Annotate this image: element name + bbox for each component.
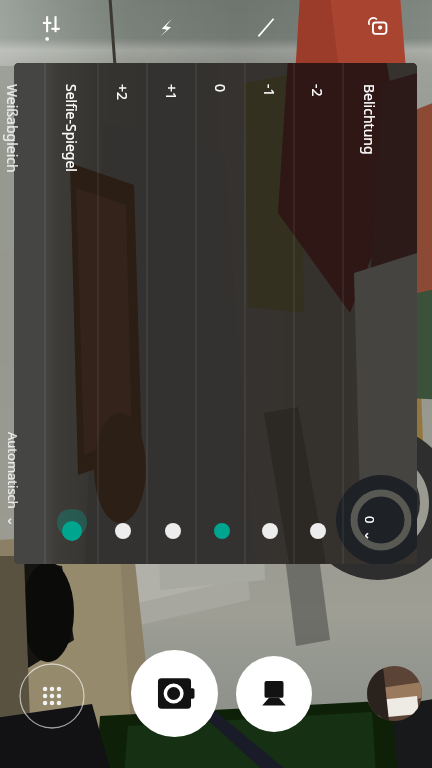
button[interactable]: Settings [32,7,74,49]
button[interactable]: Option [296,509,340,553]
staticText: -2 [308,84,327,97]
button[interactable]: Gallery [367,666,422,721]
staticText: +1 [162,84,181,101]
button[interactable]: Weißabgleich [1,84,25,314]
button[interactable]: +1 [160,84,184,314]
button[interactable]: 0 ⌄ [358,516,382,746]
staticText: Selfie-Spiegel [62,84,81,172]
staticText: 0 [211,84,230,93]
button[interactable]: Option [151,509,195,553]
button[interactable]: Option [101,509,145,553]
button[interactable]: Automatisch ⌄ [1,432,25,662]
button[interactable]: Option [248,509,292,553]
button[interactable]: Record video [236,656,312,732]
staticText: Belichtung [360,84,379,155]
staticText: -1 [260,84,279,97]
button[interactable]: 0 [209,84,233,314]
button[interactable]: Option [200,509,244,553]
button[interactable]: Switch camera [357,7,399,49]
button[interactable]: Option [50,509,94,553]
button[interactable]: Selfie-Spiegel [60,84,84,314]
staticText: +2 [113,84,132,101]
staticText: 0 ⌄ [361,516,379,542]
button[interactable]: Flash auto [145,7,187,49]
button[interactable]: -2 [306,84,330,314]
button[interactable]: -1 [258,84,282,314]
button[interactable]: HDR off [245,7,287,49]
button[interactable]: Belichtung [358,84,382,314]
button[interactable]: Take photo [131,650,218,737]
button[interactable]: +2 [111,84,135,314]
staticText: Automatisch ⌄ [4,432,22,527]
staticText: Weißabgleich [3,84,22,173]
button[interactable]: Modes [19,663,85,729]
